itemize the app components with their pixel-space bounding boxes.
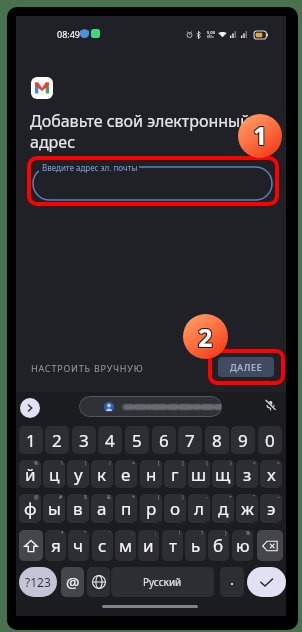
button[interactable]: ш	[188, 460, 210, 488]
staticText: 1	[253, 119, 268, 153]
button[interactable]: ч	[68, 530, 89, 561]
staticText: ДАЛЕЕ	[230, 361, 263, 373]
staticText: (	[158, 494, 160, 501]
staticText: щ	[215, 463, 231, 486]
staticText: 1	[253, 120, 268, 154]
button[interactable]: 0	[258, 426, 282, 454]
button[interactable]: Голосовой ввод отключён	[262, 397, 279, 414]
button[interactable]: п	[115, 494, 137, 523]
button[interactable]: й	[19, 460, 41, 488]
button[interactable]: Адрес электронной почты	[79, 396, 222, 417]
button[interactable]: НАСТРОИТЬ ВРУЧНУЮ	[31, 362, 144, 374]
button[interactable]: э	[260, 494, 282, 523]
button[interactable]: 5	[125, 426, 149, 454]
staticText: '	[109, 530, 111, 537]
button[interactable]: Русский	[111, 567, 214, 597]
button[interactable]: т	[162, 530, 183, 561]
staticText: в	[73, 497, 83, 520]
staticText: 2	[198, 321, 213, 355]
button[interactable]: о	[164, 494, 186, 523]
staticText: ш	[191, 463, 207, 486]
button[interactable]: ф	[19, 494, 41, 523]
staticText: {	[206, 460, 208, 467]
button[interactable]: л	[188, 494, 210, 523]
button[interactable]: в	[67, 494, 89, 523]
staticText: |	[84, 460, 87, 467]
button[interactable]: ж	[236, 494, 258, 523]
staticText: @	[66, 572, 80, 592]
button[interactable]: .	[220, 567, 244, 597]
button[interactable]: ы	[43, 494, 65, 523]
button[interactable]: е	[115, 460, 137, 488]
staticText: ]	[182, 460, 184, 467]
button[interactable]: я	[45, 530, 66, 561]
button[interactable]: з	[236, 460, 258, 488]
button[interactable]: х	[260, 460, 282, 488]
button[interactable]: к	[91, 460, 113, 488]
staticText: и	[143, 534, 154, 557]
staticText: м	[119, 534, 133, 557]
staticText: 6	[159, 429, 169, 452]
staticText: д	[218, 497, 229, 520]
staticText: \	[61, 460, 63, 467]
button[interactable]: ДАЛЕЕ	[218, 357, 274, 377]
button[interactable]: и	[138, 530, 159, 561]
staticText: к	[97, 463, 107, 486]
staticText: 1	[254, 118, 269, 152]
button[interactable]: д	[212, 494, 234, 523]
staticText: о	[170, 497, 181, 520]
button[interactable]: @	[61, 567, 84, 597]
staticText: @	[34, 494, 39, 501]
staticText: н	[146, 463, 157, 486]
staticText: >	[277, 460, 280, 467]
staticText: е	[121, 463, 131, 486]
staticText: б	[213, 534, 224, 557]
button[interactable]: 4	[98, 426, 122, 454]
button[interactable]: б	[208, 530, 229, 561]
button[interactable]: а	[91, 494, 113, 523]
button[interactable]: н	[140, 460, 162, 488]
button[interactable]: ц	[43, 460, 65, 488]
staticText: у	[74, 463, 83, 486]
button[interactable]: ?123	[19, 567, 57, 597]
button[interactable]: ю	[232, 530, 253, 561]
button[interactable]: Сменить язык	[87, 567, 110, 597]
button[interactable]: 9	[231, 426, 255, 454]
staticText: "	[253, 494, 256, 501]
button[interactable]: 7	[178, 426, 202, 454]
staticText: 2	[52, 429, 62, 452]
button[interactable]: 8	[205, 426, 229, 454]
staticText: %	[34, 460, 39, 467]
button[interactable]: Развернуть панель	[20, 398, 40, 418]
staticText: р	[146, 497, 157, 520]
button[interactable]: г	[164, 460, 186, 488]
staticText: ?123	[25, 574, 51, 590]
button[interactable]: м	[115, 530, 136, 561]
button[interactable]: Введите адрес эл. почты	[33, 167, 272, 200]
button[interactable]: ь	[185, 530, 206, 561]
button[interactable]: 6	[152, 426, 176, 454]
staticText: 2	[197, 319, 212, 353]
button[interactable]: Удалить	[257, 530, 283, 561]
staticText: ю	[236, 534, 250, 557]
staticText: з	[243, 463, 252, 486]
button[interactable]: 1	[19, 426, 43, 454]
staticText: й	[25, 463, 36, 486]
button[interactable]: у	[67, 460, 89, 488]
staticText: 1	[26, 429, 36, 452]
staticText: [	[158, 460, 160, 467]
button[interactable]: щ	[212, 460, 234, 488]
button[interactable]: с	[92, 530, 113, 561]
button[interactable]: Готово	[247, 567, 286, 597]
staticText: ф	[24, 497, 37, 520]
staticText: &	[107, 494, 111, 501]
staticText: с	[98, 534, 107, 557]
button[interactable]: 3	[72, 426, 96, 454]
staticText: 1	[253, 118, 268, 152]
button[interactable]: р	[140, 494, 162, 523]
staticText: }	[230, 460, 232, 467]
staticText: Русский	[143, 575, 182, 589]
staticText: ь	[191, 534, 201, 557]
button[interactable]: Shift	[19, 530, 43, 561]
button[interactable]: 2	[45, 426, 69, 454]
